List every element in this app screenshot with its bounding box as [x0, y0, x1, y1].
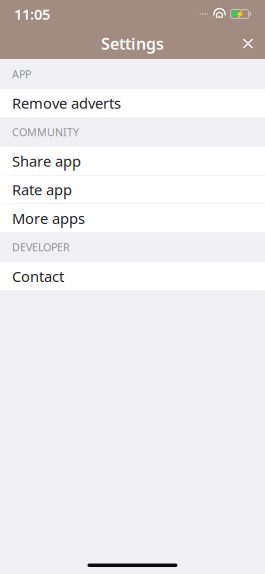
button[interactable]: More apps	[0, 204, 265, 232]
button[interactable]: Remove adverts	[0, 89, 265, 117]
staticText: Contact	[12, 266, 64, 286]
staticText: ⚡	[234, 9, 244, 18]
staticText: Share app	[12, 151, 81, 171]
staticText: APP	[12, 67, 31, 81]
button[interactable]: Contact	[0, 262, 265, 290]
staticText: Remove adverts	[12, 93, 121, 113]
button[interactable]: Share app	[0, 147, 265, 175]
staticText: DEVELOPER	[12, 240, 70, 254]
staticText: Rate app	[12, 180, 72, 199]
staticText: More apps	[12, 208, 85, 228]
button[interactable]: Close	[231, 28, 265, 58]
staticText: COMMUNITY	[12, 125, 79, 139]
staticText: Settings	[101, 33, 164, 54]
button[interactable]: Rate app	[0, 176, 265, 204]
staticText: 11:05	[14, 4, 50, 24]
